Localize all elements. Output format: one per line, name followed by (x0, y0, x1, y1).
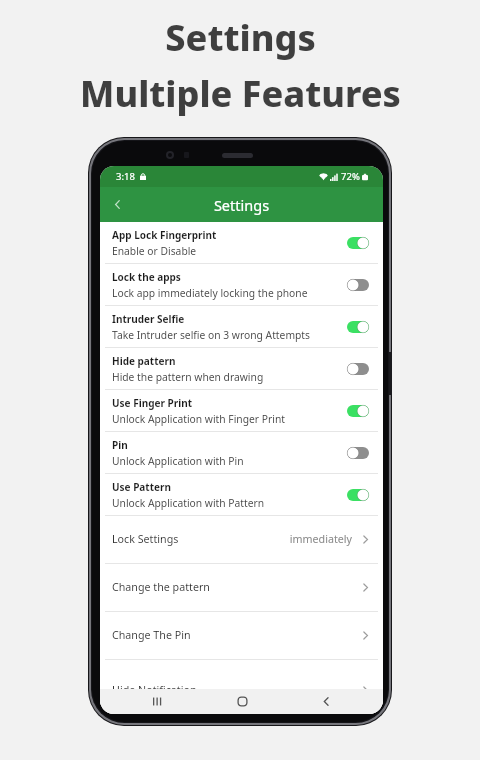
staticText: Settings (100, 195, 383, 215)
button[interactable]: App Lock Fingerprint (100, 222, 383, 263)
staticText: Hide the pattern when drawing (112, 370, 264, 384)
staticText: Hide Notification (112, 683, 197, 698)
staticText: Pin (112, 438, 128, 452)
staticText: Multiple Features (80, 69, 401, 118)
staticText: Intruder Selfie (112, 312, 185, 326)
staticText: Use Pattern (112, 480, 171, 494)
staticText: Unlock Application with Finger Print (112, 412, 285, 426)
button[interactable]: Hide Notification (100, 660, 383, 714)
staticText: Use Finger Print (112, 396, 192, 410)
staticText: Change The Pin (112, 628, 191, 643)
staticText: 72% (341, 170, 360, 183)
button[interactable]: Back (306, 689, 346, 714)
staticText: Change the pattern (112, 580, 210, 595)
button[interactable]: Back (100, 187, 134, 221)
button[interactable]: Recents (137, 689, 177, 714)
button[interactable]: Pin (100, 432, 383, 473)
staticText: Settings (165, 13, 316, 62)
button[interactable]: Hide pattern (100, 348, 383, 389)
staticText: Lock Settings (112, 532, 179, 547)
button[interactable]: Use Finger Print (100, 390, 383, 431)
button[interactable]: Change the pattern (100, 564, 383, 611)
button[interactable]: Home (222, 689, 262, 714)
button[interactable]: Lock Settings (100, 516, 383, 563)
staticText: Lock the apps (112, 270, 181, 284)
staticText: Take Intruder selfie on 3 wrong Attempts (112, 328, 311, 342)
button[interactable]: Lock the apps (100, 264, 383, 305)
staticText: 3:18 (116, 170, 135, 183)
staticText: App Lock Fingerprint (112, 228, 217, 242)
staticText: Unlock Application with Pin (112, 454, 244, 468)
staticText: Unlock Application with Pattern (112, 496, 265, 510)
button[interactable]: Use Pattern (100, 474, 383, 515)
staticText: Hide pattern (112, 354, 176, 368)
staticText: Lock app immediately locking the phone (112, 286, 308, 300)
staticText: Enable or Disable (112, 244, 197, 258)
staticText: immediately (289, 532, 352, 547)
button[interactable]: Change The Pin (100, 612, 383, 659)
button[interactable]: Intruder Selfie (100, 306, 383, 347)
